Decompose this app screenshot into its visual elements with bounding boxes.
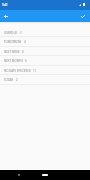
- staticText: 3: [22, 50, 24, 54]
- staticText: NEXT MONTH: [4, 59, 23, 63]
- button[interactable]: Home: [39, 171, 51, 179]
- staticText: 6: [25, 59, 27, 63]
- staticText: NEXT WEEK: [4, 50, 20, 54]
- staticText: 9:41: [2, 3, 8, 7]
- button[interactable]: Back: [16, 172, 22, 178]
- staticText: TOMORROW: [4, 40, 22, 44]
- staticText: 2: [16, 78, 18, 82]
- staticText: TODAY: [4, 78, 14, 82]
- button[interactable]: OVERDUE: [0, 28, 90, 37]
- button[interactable]: NEXT MONTH: [0, 56, 90, 66]
- button[interactable]: TODAY: [0, 75, 90, 85]
- button[interactable]: NO DATE SPECIFIED: [0, 66, 90, 75]
- button[interactable]: NEXT WEEK: [0, 47, 90, 56]
- staticText: OVERDUE: [4, 31, 18, 35]
- staticText: 4: [24, 40, 26, 44]
- button[interactable]: TOMORROW: [0, 37, 90, 47]
- button[interactable]: Done: [78, 11, 88, 21]
- staticText: 2: [20, 31, 22, 35]
- staticText: 11: [33, 69, 37, 73]
- staticText: NO DATE SPECIFIED: [4, 69, 31, 73]
- button[interactable]: Navigate up: [1, 11, 11, 21]
